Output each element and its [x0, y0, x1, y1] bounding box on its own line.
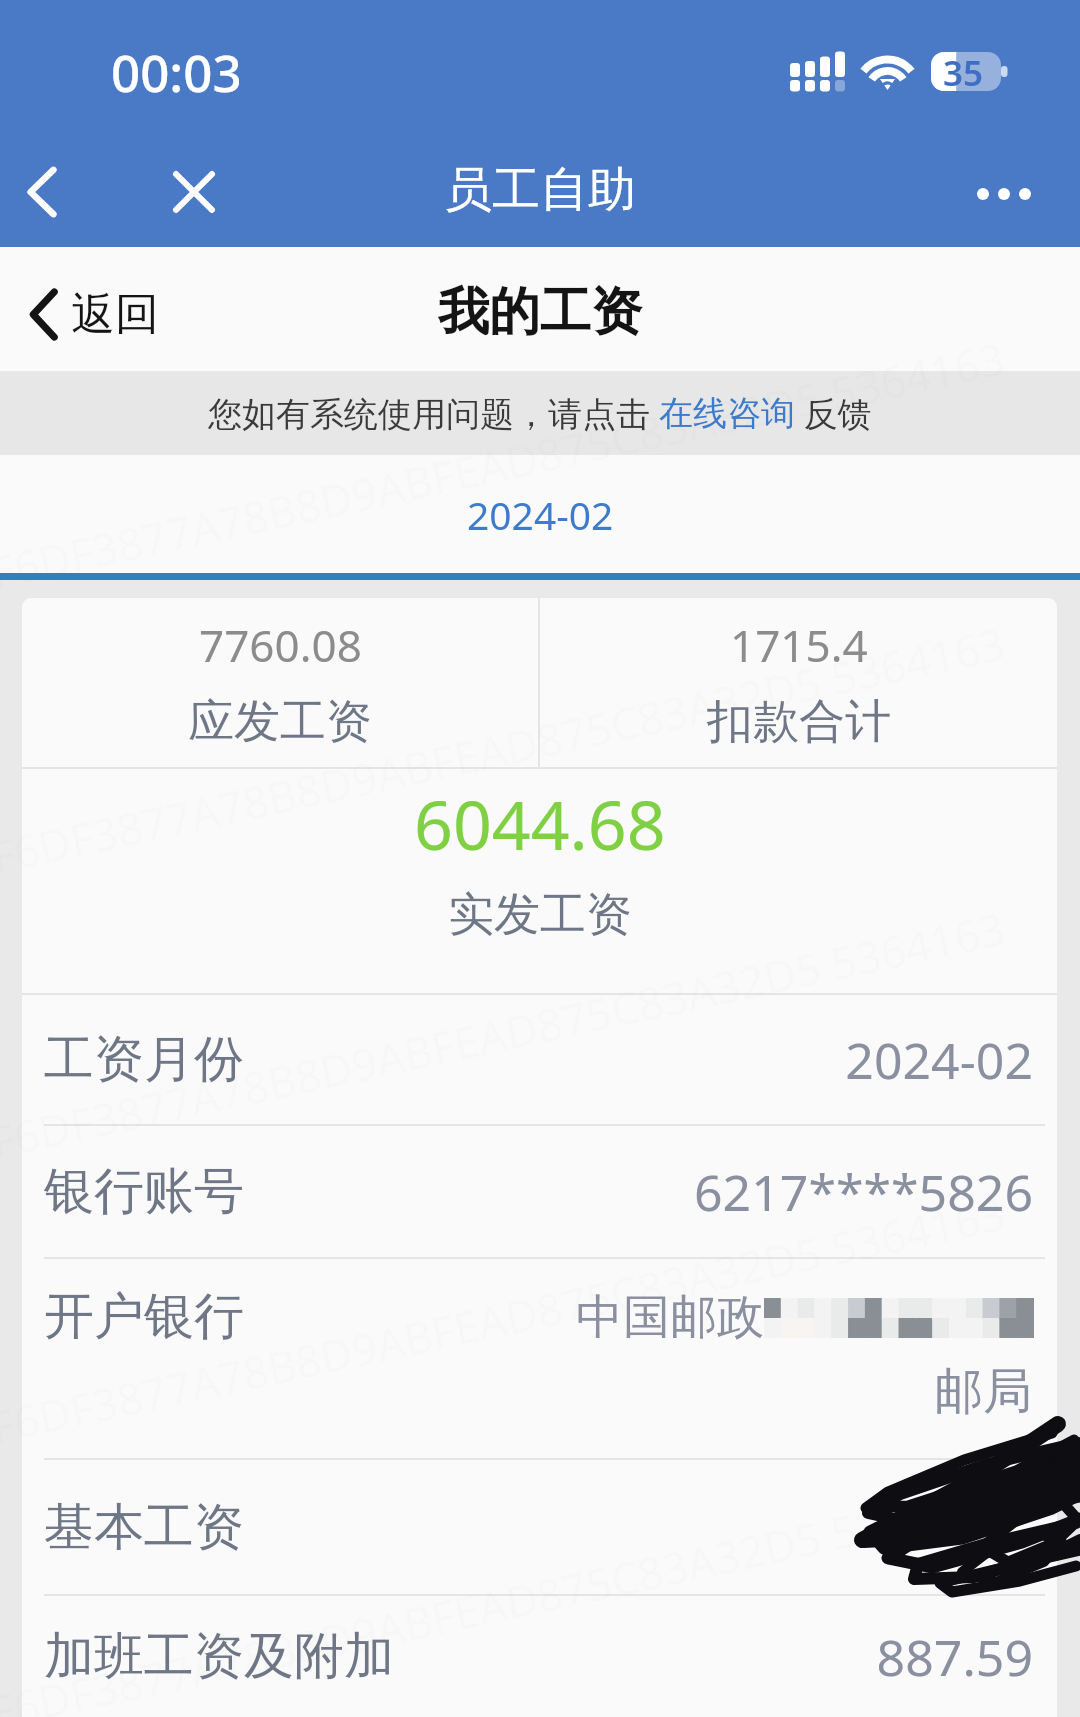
button[interactable]: 2024-02	[0, 455, 1080, 573]
button[interactable]: 加班工资及附加	[22, 1596, 1057, 1717]
button[interactable]: Close	[152, 150, 236, 234]
button[interactable]: 工资月份	[22, 995, 1057, 1124]
staticText: F6DF3877A78B8D9ABFEAD875C83A32D5 5364163…	[0, 888, 1054, 1172]
staticText: 2024-02	[467, 488, 614, 541]
button[interactable]: Back	[2, 150, 82, 234]
staticText: 6044.68	[414, 777, 666, 870]
button[interactable]: 基本工资	[22, 1460, 1057, 1594]
button[interactable]: 7760.08	[22, 598, 538, 767]
staticText: 实发工资	[448, 886, 632, 944]
staticText: F6DF3877A78B8D9ABFEAD875C83A32D5 5364163…	[0, 603, 1054, 887]
button[interactable]: 1715.4	[540, 598, 1057, 767]
staticText: 工资月份	[44, 1028, 244, 1091]
staticText: 邮局	[934, 1361, 1032, 1423]
button[interactable]: 返回	[0, 263, 179, 356]
staticText: F6DF3877A78B8D9ABFEAD875C83A32D5 5364163…	[0, 318, 1054, 602]
staticText: 我的工资	[438, 280, 642, 344]
staticText: 加班工资及附加	[44, 1625, 394, 1688]
staticText: 35	[943, 49, 984, 89]
staticText: F6DF3877A78B8D9ABFEAD875C83A32D5 5364163…	[0, 1173, 1054, 1457]
staticText: 返回	[71, 287, 159, 342]
staticText: 00:03	[111, 37, 242, 106]
staticText: 7760.08	[199, 615, 362, 675]
staticText: F6DF3877A78B8D9ABFEAD875C83A32D5 5364163…	[0, 1458, 1054, 1717]
staticText: 中国邮政	[576, 1288, 764, 1347]
staticText: 1715.4	[730, 615, 868, 675]
staticText: 887.59	[876, 1623, 1033, 1691]
staticText: 2024-02	[845, 1026, 1033, 1094]
staticText: 银行账号	[44, 1160, 244, 1223]
staticText: 应发工资	[188, 693, 372, 751]
button[interactable]: More options	[950, 150, 1060, 234]
staticText: 您如有系统使用问题，请点击	[208, 390, 659, 436]
staticText: 6217****5826	[694, 1158, 1033, 1226]
button[interactable]: 在线咨询	[659, 392, 795, 435]
button[interactable]: 开户银行	[22, 1259, 1057, 1458]
staticText: 基本工资	[44, 1496, 244, 1559]
staticText: 反馈	[795, 390, 872, 436]
button[interactable]: 银行账号	[22, 1126, 1057, 1257]
staticText: 开户银行	[44, 1285, 244, 1348]
staticText: 扣款合计	[707, 693, 891, 751]
staticText: 员工自助	[444, 160, 636, 220]
